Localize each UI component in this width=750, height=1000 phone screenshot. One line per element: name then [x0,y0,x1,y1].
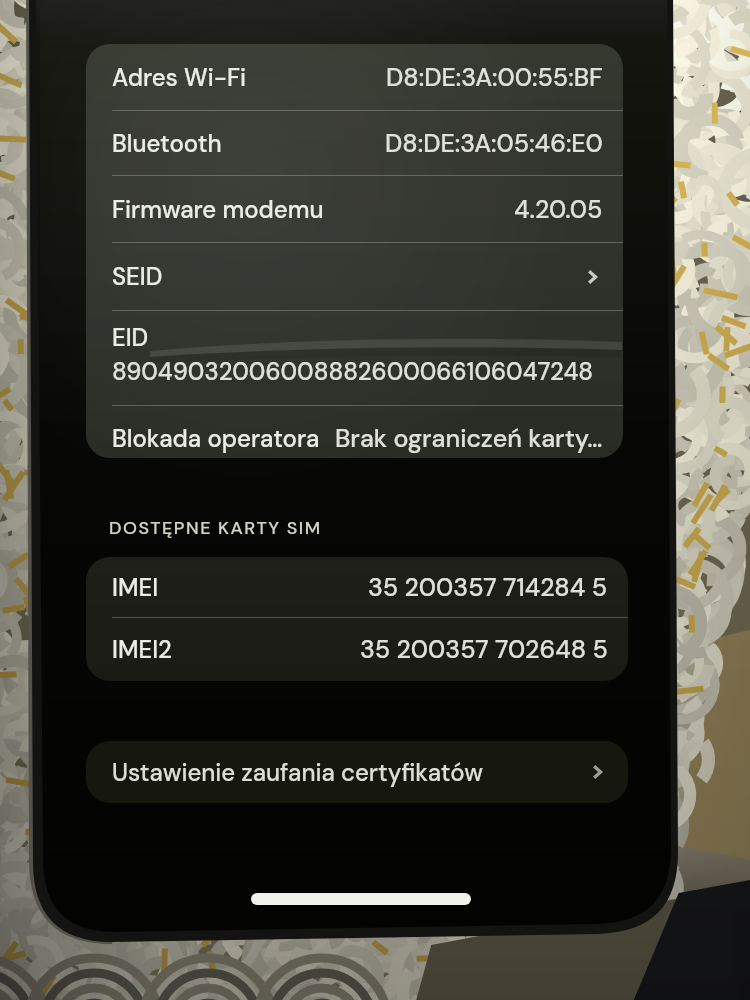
staticText: Bluetooth [112,128,222,159]
staticText: Adres Wi-Fi [112,62,246,93]
staticText: Firmware modemu [112,194,324,225]
staticText: SEID [112,261,163,292]
staticText: EID [112,322,149,353]
staticText: D8:DE:3A:05:46:E0 [385,127,603,160]
button[interactable]: EID [112,311,603,405]
button[interactable]: IMEI [112,557,608,617]
button[interactable]: Adres Wi-Fi [112,44,603,110]
other: Open [583,268,601,286]
staticText: IMEI2 [112,634,172,665]
button[interactable]: Blokada operatora [112,418,603,458]
staticText: 89049032006008882600066106047248 [112,356,594,387]
staticText: D8:DE:3A:00:55:BF [386,61,603,94]
button[interactable]: SEID [112,243,601,310]
staticText: 35 200357 702648 5 [360,633,608,666]
button[interactable]: Bluetooth [112,111,603,175]
button[interactable]: IMEI2 [112,618,608,681]
staticText: Ustawienie zaufania certyfikatów [112,757,483,788]
other: Open [588,763,606,781]
button[interactable]: Firmware modemu [112,176,603,242]
staticText: 4.20.05 [514,193,603,226]
staticText: Blokada operatora [112,423,320,454]
staticText: DOSTĘPNE KARTY SIM [109,516,322,539]
staticText: 35 200357 714284 5 [368,571,608,604]
staticText: Brak ograniczeń karty… [335,422,603,455]
button[interactable]: Ustawienie zaufania certyfikatów [86,741,628,803]
staticText: IMEI [112,572,159,603]
